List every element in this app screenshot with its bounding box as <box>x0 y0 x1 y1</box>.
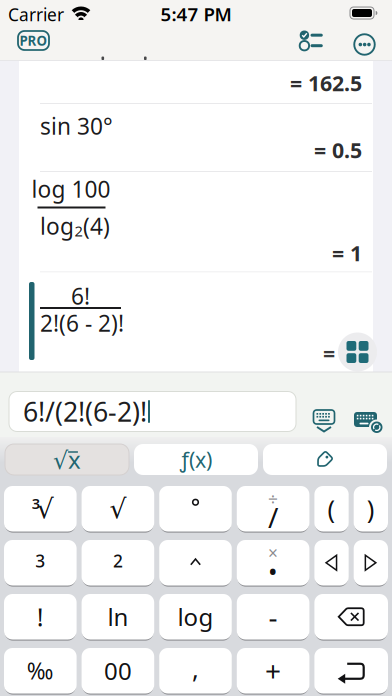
staticText: √ <box>37 494 54 524</box>
staticText: √x <box>53 444 81 475</box>
staticText: = <box>323 339 335 367</box>
button[interactable]: ƒ(x) <box>134 444 258 475</box>
button[interactable]: Tags <box>263 444 387 475</box>
button[interactable]: History entry, sin 30° = 0.5 <box>19 104 372 171</box>
button[interactable]: + <box>237 648 309 693</box>
staticText: × <box>268 541 278 564</box>
staticText: log 100 <box>31 174 110 204</box>
button[interactable]: Delete <box>314 594 388 639</box>
staticText: Carrier <box>8 3 64 26</box>
button[interactable]: Enter <box>314 648 388 693</box>
button[interactable]: ln <box>82 594 154 639</box>
button[interactable]: Move cursor left <box>314 540 349 585</box>
button[interactable]: Expression input field <box>9 391 296 431</box>
staticText: log <box>177 601 213 633</box>
staticText: = 0.5 <box>314 136 362 164</box>
staticText: / <box>268 499 278 536</box>
staticText: √ <box>109 494 126 524</box>
button[interactable]: Result formats <box>338 332 377 371</box>
staticText: ƒ(x) <box>180 445 212 474</box>
staticText: ( <box>327 492 335 525</box>
staticText: = 162.5 <box>290 69 362 97</box>
button[interactable]: , <box>159 648 232 693</box>
staticText: ! <box>37 600 44 633</box>
button[interactable]: History entry, result 162.5 <box>19 61 372 103</box>
staticText: 5:47 PM <box>160 2 231 26</box>
button[interactable]: × <box>237 540 309 585</box>
staticText: 2 <box>74 221 82 240</box>
staticText: log <box>40 211 74 241</box>
staticText: 3 <box>35 549 45 572</box>
staticText: sin 30° <box>40 111 113 141</box>
button[interactable]: Hide keyboard <box>310 406 338 434</box>
button[interactable]: PRO <box>18 31 49 50</box>
button[interactable]: ) <box>354 486 388 531</box>
button[interactable]: Cube root <box>4 486 77 531</box>
button[interactable]: 2 <box>82 540 154 585</box>
staticText: = 1 <box>332 239 362 267</box>
button[interactable]: Move cursor right <box>354 540 388 585</box>
staticText: ÷ <box>268 487 278 510</box>
staticText: + <box>265 652 281 689</box>
button[interactable]: ( <box>314 486 349 531</box>
staticText: (4) <box>83 211 110 241</box>
staticText: PRO <box>19 32 47 49</box>
button[interactable]: History entry, log 100 over log2(4) = 1 <box>19 172 372 271</box>
staticText: 2 <box>113 549 123 572</box>
staticText: ‰ <box>27 656 54 686</box>
button[interactable]: Switch keyboard <box>352 406 384 436</box>
staticText: - <box>269 598 278 635</box>
staticText: • <box>268 554 278 588</box>
button[interactable]: History entry, 6! over 2!(6-2)!, selecte… <box>19 272 372 371</box>
staticText: , <box>192 652 199 685</box>
staticText: 00 <box>104 655 132 687</box>
button[interactable]: 3 <box>4 540 77 585</box>
staticText: 2!(6 - 2)! <box>40 308 124 338</box>
staticText: ln <box>107 601 128 633</box>
button[interactable]: ÷ <box>237 486 309 531</box>
button[interactable]: log <box>159 594 232 639</box>
button[interactable]: √ <box>82 486 154 531</box>
button[interactable]: ! <box>4 594 77 639</box>
button[interactable]: ‰ <box>4 648 77 693</box>
button[interactable]: 00 <box>82 648 154 693</box>
staticText: 6! <box>71 281 90 311</box>
staticText: 3 <box>32 494 40 513</box>
button[interactable]: √x <box>5 444 129 475</box>
button[interactable]: Degree <box>159 486 232 531</box>
button[interactable]: History list <box>294 26 328 54</box>
staticText: 6!/(2!(6-2)! <box>23 394 147 429</box>
button[interactable]: More options <box>346 26 375 55</box>
button[interactable]: - <box>237 594 309 639</box>
staticText: ) <box>367 492 375 525</box>
button[interactable]: Power <box>159 540 232 585</box>
